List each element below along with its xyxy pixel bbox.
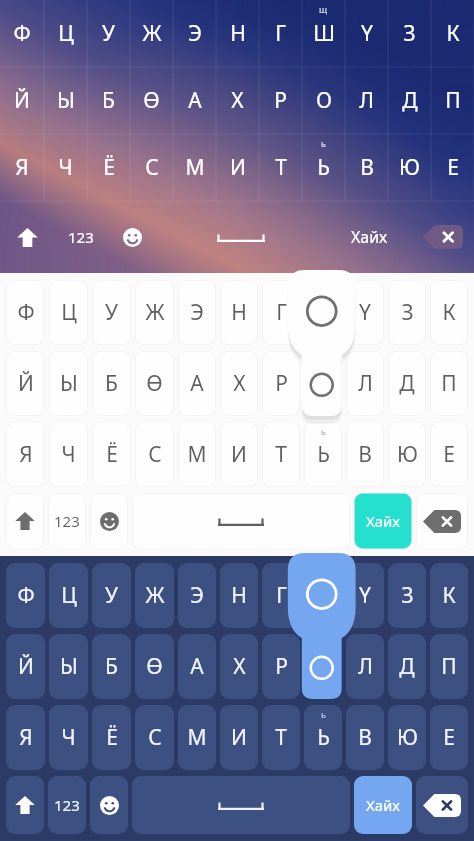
button[interactable]: Shift — [6, 776, 44, 834]
button[interactable]: Б — [92, 634, 131, 699]
button[interactable]: А — [178, 634, 216, 699]
button[interactable]: Э — [173, 0, 216, 67]
button[interactable]: К — [430, 280, 468, 345]
button[interactable] — [304, 634, 342, 699]
button[interactable]: Л — [346, 351, 384, 416]
button[interactable]: З — [388, 0, 431, 67]
button[interactable]: С — [135, 705, 174, 770]
button[interactable]: У — [92, 280, 131, 345]
button[interactable]: М — [178, 705, 216, 770]
button[interactable] — [304, 351, 342, 416]
button[interactable]: Р — [259, 67, 302, 134]
button[interactable]: Ц — [49, 280, 88, 345]
button[interactable]: З — [388, 280, 426, 345]
button[interactable]: П — [431, 67, 474, 134]
button[interactable]: Ю — [388, 422, 426, 487]
button[interactable]: Space — [132, 776, 350, 834]
button[interactable]: Л — [346, 634, 384, 699]
button[interactable]: Хайх — [354, 493, 412, 549]
button[interactable]: Н — [220, 563, 258, 628]
button[interactable] — [304, 563, 342, 628]
button[interactable]: А — [173, 67, 216, 134]
button[interactable]: К — [431, 0, 474, 67]
button[interactable]: Ж — [135, 563, 174, 628]
button[interactable]: Ё — [92, 422, 131, 487]
button[interactable]: Ь — [304, 705, 342, 770]
button[interactable]: П — [430, 351, 468, 416]
button[interactable]: Й — [6, 634, 45, 699]
button[interactable]: М — [173, 134, 216, 201]
button[interactable] — [304, 280, 342, 345]
button[interactable]: Т — [262, 705, 300, 770]
button[interactable]: 123 — [48, 776, 86, 834]
button[interactable]: Т — [262, 422, 300, 487]
button[interactable]: Ж — [135, 280, 174, 345]
button[interactable]: Х — [220, 351, 258, 416]
button[interactable]: Space — [156, 201, 326, 273]
button[interactable]: Emoji — [90, 493, 128, 549]
button[interactable]: Н — [220, 280, 258, 345]
button[interactable]: Я — [6, 422, 45, 487]
button[interactable]: Ы — [49, 351, 88, 416]
button[interactable]: Ч — [44, 134, 87, 201]
button[interactable]: Г — [262, 563, 300, 628]
button[interactable]: Ч — [49, 422, 88, 487]
button[interactable]: А — [178, 351, 216, 416]
button[interactable]: Р — [262, 634, 300, 699]
button[interactable]: Х — [216, 67, 259, 134]
button[interactable]: Ф — [0, 0, 44, 67]
button[interactable]: Ө — [135, 351, 174, 416]
button[interactable]: М — [178, 422, 216, 487]
button[interactable]: И — [220, 705, 258, 770]
button[interactable]: Г — [262, 280, 300, 345]
button[interactable]: Р — [262, 351, 300, 416]
button[interactable]: Е — [431, 134, 474, 201]
button[interactable]: Ч — [49, 705, 88, 770]
button[interactable]: П — [430, 634, 468, 699]
button[interactable]: Хайх — [354, 776, 412, 834]
button[interactable]: Ц — [49, 563, 88, 628]
button[interactable]: Emoji — [108, 201, 156, 273]
button[interactable]: Ю — [388, 134, 431, 201]
button[interactable]: Ө — [130, 67, 173, 134]
button[interactable]: Б — [92, 351, 131, 416]
button[interactable]: Д — [388, 351, 426, 416]
button[interactable]: Ш — [302, 0, 345, 67]
button[interactable]: Д — [388, 634, 426, 699]
button[interactable]: Д — [388, 67, 431, 134]
button[interactable]: Х — [220, 634, 258, 699]
button[interactable]: Ф — [6, 280, 45, 345]
button[interactable]: С — [135, 422, 174, 487]
button[interactable]: Е — [430, 422, 468, 487]
button[interactable]: Я — [0, 134, 44, 201]
button[interactable]: Э — [178, 563, 216, 628]
button[interactable]: Б — [87, 67, 130, 134]
button[interactable]: Shift — [6, 493, 44, 549]
button[interactable]: 123 — [54, 201, 108, 273]
button[interactable]: Ф — [6, 563, 45, 628]
button[interactable]: Shift — [0, 201, 54, 273]
button[interactable]: Emoji — [90, 776, 128, 834]
button[interactable]: Ц — [44, 0, 87, 67]
button[interactable]: У — [87, 0, 130, 67]
button[interactable]: Ю — [388, 705, 426, 770]
button[interactable]: Г — [259, 0, 302, 67]
button[interactable]: Т — [259, 134, 302, 201]
button[interactable]: Delete — [412, 201, 474, 273]
button[interactable]: В — [346, 705, 384, 770]
button[interactable]: Э — [178, 280, 216, 345]
button[interactable]: К — [430, 563, 468, 628]
button[interactable]: З — [388, 563, 426, 628]
button[interactable]: Ө — [135, 634, 174, 699]
button[interactable]: Хайх — [326, 201, 412, 273]
button[interactable]: Ь — [302, 134, 345, 201]
button[interactable]: И — [216, 134, 259, 201]
button[interactable]: В — [345, 134, 388, 201]
button[interactable]: Ү — [346, 280, 384, 345]
button[interactable]: 123 — [48, 493, 86, 549]
button[interactable]: Space — [132, 493, 350, 549]
button[interactable]: О — [302, 67, 345, 134]
button[interactable]: И — [220, 422, 258, 487]
button[interactable]: В — [346, 422, 384, 487]
button[interactable]: Н — [216, 0, 259, 67]
